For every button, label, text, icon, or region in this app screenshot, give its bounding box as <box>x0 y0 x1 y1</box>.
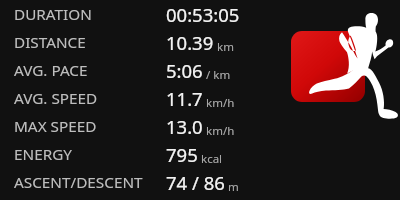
staticText: 00:53:05 <box>166 2 240 27</box>
button[interactable]: DURATION <box>0 0 400 28</box>
button[interactable]: AVG. SPEED <box>0 84 400 112</box>
staticText: 10.39 <box>166 30 214 55</box>
staticText: ASCENT/DESCENT <box>14 172 143 193</box>
staticText: m <box>225 179 239 195</box>
staticText: 13.0 <box>166 114 203 139</box>
button[interactable]: AVG. PACE <box>0 56 400 84</box>
button[interactable]: ASCENT/DESCENT <box>0 168 400 196</box>
staticText: DURATION <box>14 4 92 25</box>
staticText: 795 <box>166 142 198 167</box>
staticText: 11.7 <box>166 86 203 111</box>
staticText: MAX SPEED <box>14 116 97 137</box>
staticText: ENERGY <box>14 144 72 165</box>
staticText: 74 / 86 <box>166 170 225 195</box>
staticText: km/h <box>203 95 235 111</box>
button[interactable]: ENERGY <box>0 140 400 168</box>
staticText: 5:06 <box>166 58 203 83</box>
staticText: kcal <box>198 151 223 167</box>
staticText: AVG. SPEED <box>14 88 98 109</box>
staticText: / km <box>203 67 231 83</box>
staticText: AVG. PACE <box>14 60 88 81</box>
staticText: km/h <box>203 123 235 139</box>
button[interactable]: DISTANCE <box>0 28 400 56</box>
staticText: km <box>214 39 234 55</box>
staticText: DISTANCE <box>14 32 86 53</box>
button[interactable]: MAX SPEED <box>0 112 400 140</box>
